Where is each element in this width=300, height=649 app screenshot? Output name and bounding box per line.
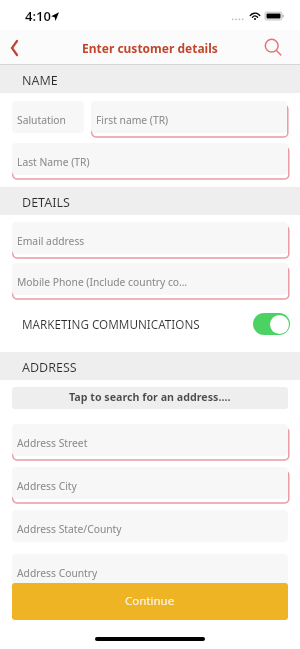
button[interactable]: Marketing communications toggle [253, 313, 290, 335]
button[interactable]: Address Street [12, 424, 288, 456]
button[interactable]: Address Country [12, 554, 288, 586]
staticText: Address Country [17, 566, 98, 580]
button[interactable]: Address City [12, 467, 288, 499]
staticText: Enter customer details [82, 40, 218, 56]
staticText: NAME [22, 72, 58, 89]
staticText: First name (TR) [96, 113, 169, 127]
staticText: ADDRESS [22, 359, 77, 376]
button[interactable]: Salutation [12, 101, 84, 133]
button[interactable]: Search [256, 30, 290, 65]
staticText: Mobile Phone (Include country co… [17, 275, 188, 289]
button[interactable]: Last Name (TR) [12, 143, 288, 175]
staticText: Tap to search for an address.... [69, 390, 231, 405]
button[interactable]: Tap to search for an address.... [12, 387, 288, 409]
button[interactable]: Address State/County [12, 510, 288, 542]
staticText: Continue [125, 593, 175, 609]
staticText: Address State/County [17, 522, 122, 536]
button[interactable]: MARKETING COMMUNICATIONS [0, 300, 300, 350]
staticText: MARKETING COMMUNICATIONS [22, 316, 200, 332]
button[interactable]: First name (TR) [91, 101, 287, 133]
staticText: Salutation [17, 113, 66, 127]
staticText: Address City [17, 479, 77, 493]
button[interactable]: Back [0, 31, 34, 65]
staticText: Address Street [17, 436, 88, 450]
staticText: 4:10 [25, 7, 51, 25]
staticText: Last Name (TR) [17, 155, 90, 169]
button[interactable]: Continue [12, 583, 288, 620]
staticText: DETAILS [22, 194, 70, 211]
button[interactable]: Mobile Phone (Include country co… [12, 263, 288, 295]
button[interactable]: Email address [12, 222, 288, 254]
staticText: Email address [17, 234, 85, 248]
